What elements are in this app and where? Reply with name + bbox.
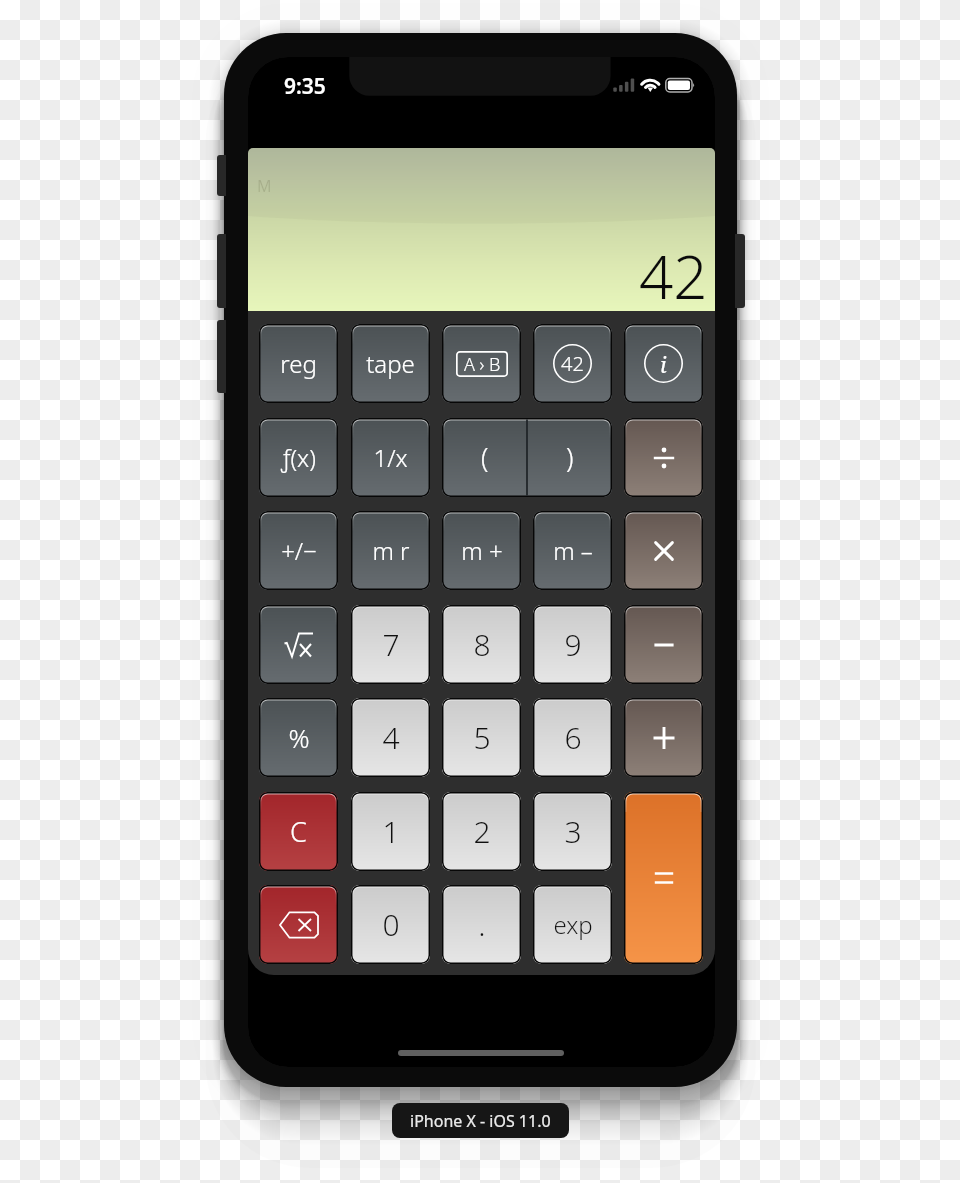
staticText: m + — [461, 534, 503, 567]
button[interactable]: % — [259, 698, 338, 777]
staticText: 42 — [639, 235, 708, 311]
button[interactable]: Square root — [259, 605, 338, 684]
staticText: A › B — [464, 352, 501, 377]
staticText: tape — [366, 347, 415, 380]
staticText: 1/x — [373, 441, 408, 474]
button[interactable]: exp — [533, 885, 612, 964]
staticText: 9 — [564, 624, 582, 665]
button[interactable]: Minus — [624, 605, 703, 684]
button[interactable]: m – — [533, 511, 612, 590]
button[interactable]: Convert A to B — [442, 324, 521, 403]
button[interactable]: 1/x — [351, 418, 430, 497]
button[interactable]: 6 — [533, 698, 612, 777]
button[interactable]: 1 — [351, 792, 430, 871]
button[interactable]: Divide — [624, 418, 703, 497]
staticText: 42 — [561, 350, 584, 377]
staticText: 0 — [382, 904, 400, 945]
button[interactable]: Constant 42 — [533, 324, 612, 403]
button[interactable]: 4 — [351, 698, 430, 777]
staticText: 1 — [382, 811, 400, 852]
staticText: exp — [553, 908, 593, 941]
button[interactable]: m r — [351, 511, 430, 590]
staticText: . — [478, 904, 486, 945]
staticText: 2 — [473, 811, 491, 852]
staticText: 8 — [473, 624, 491, 665]
button[interactable]: C — [259, 792, 338, 871]
button[interactable]: Delete — [259, 885, 338, 964]
staticText: m r — [372, 534, 410, 567]
staticText: ƒ(x) — [281, 441, 316, 474]
staticText: 4 — [382, 717, 400, 758]
staticText: iPhone X - iOS 11.0 — [410, 1110, 551, 1132]
button[interactable]: 8 — [442, 605, 521, 684]
button[interactable]: 2 — [442, 792, 521, 871]
staticText: reg — [280, 347, 317, 380]
staticText: M — [257, 175, 272, 197]
button[interactable]: +/− — [259, 511, 338, 590]
button[interactable]: 0 — [351, 885, 430, 964]
button[interactable]: tape — [351, 324, 430, 403]
button[interactable]: m + — [442, 511, 521, 590]
staticText: ) — [566, 439, 574, 476]
staticText: 5 — [473, 717, 491, 758]
staticText: 6 — [564, 717, 582, 758]
button[interactable]: Plus — [624, 698, 703, 777]
staticText: 7 — [382, 624, 400, 665]
staticText: i — [660, 349, 667, 379]
button[interactable]: Functions — [259, 418, 338, 497]
button[interactable]: . — [442, 885, 521, 964]
staticText: 9:35 — [284, 72, 326, 101]
staticText: C — [290, 813, 307, 850]
button[interactable]: reg — [259, 324, 338, 403]
button[interactable]: 9 — [533, 605, 612, 684]
button[interactable]: Parentheses — [442, 418, 612, 497]
staticText: +/− — [281, 534, 317, 567]
button[interactable]: 7 — [351, 605, 430, 684]
staticText: ( — [481, 439, 489, 476]
button[interactable]: 5 — [442, 698, 521, 777]
button[interactable]: Multiply — [624, 511, 703, 590]
staticText: % — [288, 720, 310, 755]
button[interactable]: Info — [624, 324, 703, 403]
button[interactable]: 3 — [533, 792, 612, 871]
staticText: 3 — [564, 811, 582, 852]
button[interactable]: Equals — [624, 792, 703, 964]
staticText: m – — [553, 534, 593, 567]
